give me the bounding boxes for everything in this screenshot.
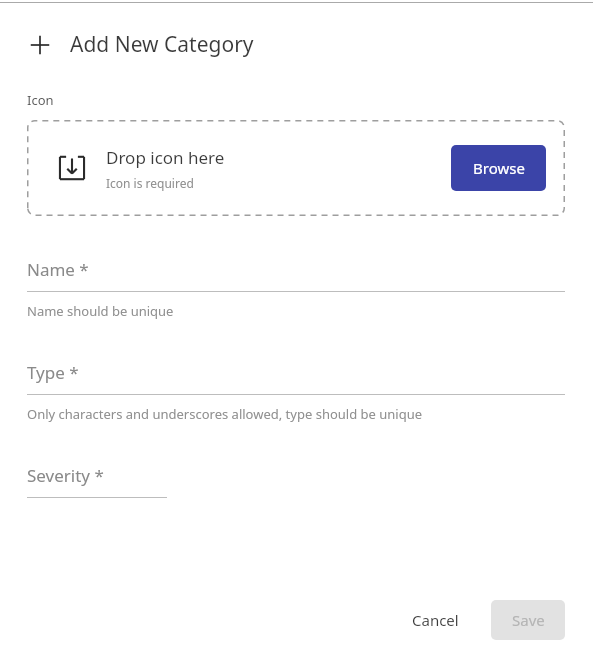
staticText: Drop icon here: [106, 146, 225, 169]
button[interactable]: Severity *: [27, 464, 565, 498]
staticText: Only characters and underscores allowed,…: [27, 405, 423, 423]
staticText: Icon: [27, 91, 54, 109]
staticText: Add New Category: [70, 30, 254, 59]
staticText: Type *: [27, 361, 79, 384]
button[interactable]: Type *: [27, 361, 565, 395]
staticText: Icon is required: [106, 175, 194, 191]
button[interactable]: Name *: [27, 258, 565, 292]
staticText: Cancel: [412, 610, 459, 630]
button[interactable]: Add: [27, 32, 53, 58]
staticText: Save: [512, 610, 545, 630]
staticText: Name *: [27, 258, 89, 281]
button[interactable]: Save: [491, 600, 565, 640]
staticText: Browse: [473, 158, 525, 178]
button[interactable]: Cancel: [398, 599, 473, 641]
staticText: Severity *: [27, 464, 104, 487]
button[interactable]: Browse: [451, 145, 546, 191]
button[interactable]: Drop icon here: [27, 120, 565, 216]
staticText: Name should be unique: [27, 302, 174, 320]
